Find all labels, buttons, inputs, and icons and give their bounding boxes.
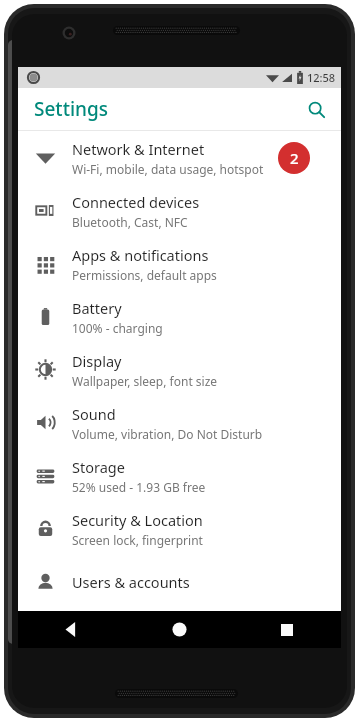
button[interactable]: Connected devices bbox=[18, 184, 341, 237]
staticText: Storage bbox=[72, 457, 125, 477]
button[interactable]: Display bbox=[18, 343, 341, 396]
staticText: Display bbox=[72, 351, 122, 371]
button[interactable]: Home bbox=[125, 611, 233, 648]
button[interactable]: Security & Location bbox=[18, 502, 341, 555]
staticText: Security & Location bbox=[72, 510, 203, 530]
staticText: Wi-Fi, mobile, data usage, hotspot bbox=[72, 161, 264, 177]
staticText: Users & accounts bbox=[72, 572, 190, 592]
button[interactable]: Battery bbox=[18, 290, 341, 343]
staticText: Wallpaper, sleep, font size bbox=[72, 373, 218, 389]
staticText: Connected devices bbox=[72, 192, 200, 212]
staticText: Settings bbox=[34, 96, 108, 122]
button[interactable]: Back bbox=[18, 611, 125, 648]
staticText: Permissions, default apps bbox=[72, 267, 217, 283]
staticText: Sound bbox=[72, 404, 116, 424]
button[interactable]: Search bbox=[299, 92, 333, 126]
staticText: Volume, vibration, Do Not Disturb bbox=[72, 426, 263, 442]
staticText: 52% used - 1.93 GB free bbox=[72, 479, 206, 495]
button[interactable]: Network & Internet bbox=[18, 131, 341, 184]
staticText: Bluetooth, Cast, NFC bbox=[72, 214, 188, 230]
button[interactable]: Recent apps bbox=[233, 611, 341, 648]
staticText: Screen lock, fingerprint bbox=[72, 532, 203, 548]
staticText: Battery bbox=[72, 298, 122, 318]
button[interactable]: Sound bbox=[18, 396, 341, 449]
staticText: 12:58 bbox=[307, 70, 336, 85]
staticText: Apps & notifications bbox=[72, 245, 209, 265]
staticText: Network & Internet bbox=[72, 139, 205, 159]
staticText: 2 bbox=[290, 148, 299, 168]
button[interactable]: Storage bbox=[18, 449, 341, 502]
staticText: 100% - charging bbox=[72, 320, 163, 336]
button[interactable]: Apps & notifications bbox=[18, 237, 341, 290]
button[interactable]: Users & accounts bbox=[18, 555, 341, 608]
